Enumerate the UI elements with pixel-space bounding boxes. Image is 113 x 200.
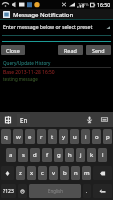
staticText: v	[52, 169, 56, 177]
staticText: En	[20, 116, 28, 124]
staticText: p	[106, 133, 110, 141]
button[interactable]: English	[29, 184, 81, 198]
button[interactable]: w	[13, 129, 23, 144]
staticText: f	[46, 151, 49, 159]
button[interactable]: o	[92, 129, 101, 144]
staticText: Enter message below or select preset	[3, 24, 93, 31]
button[interactable]: a	[6, 148, 16, 162]
button[interactable]: Backspace	[93, 166, 112, 180]
other: Switch keyboard	[100, 115, 109, 124]
staticText: m	[84, 169, 90, 177]
staticText: b	[63, 169, 67, 177]
staticText: r	[40, 133, 43, 141]
staticText: Base 2013-11-28 16:50	[3, 69, 55, 76]
button[interactable]: v	[49, 166, 58, 180]
button[interactable]: k	[87, 148, 96, 162]
staticText: i	[85, 133, 87, 141]
button[interactable]: j	[76, 148, 85, 162]
staticText: Read	[64, 47, 77, 54]
staticText: z	[19, 169, 22, 177]
staticText: Close	[6, 47, 20, 54]
button[interactable]: s	[18, 148, 28, 162]
staticText: Send	[92, 47, 105, 54]
button[interactable]: q	[1, 129, 11, 144]
button[interactable]: Read	[58, 45, 83, 55]
staticText: y	[62, 133, 66, 141]
button[interactable]: .	[83, 184, 91, 198]
button[interactable]: p	[103, 129, 112, 144]
staticText: d	[33, 151, 37, 159]
button[interactable]: c	[38, 166, 47, 180]
button[interactable]: Enter	[93, 184, 112, 198]
button[interactable]: x	[27, 166, 36, 180]
staticText: e	[28, 133, 32, 141]
button[interactable]: Shift	[1, 166, 14, 180]
staticText: 100%	[78, 2, 89, 8]
button[interactable]: e	[25, 129, 35, 144]
staticText: c	[41, 169, 44, 177]
staticText: English	[48, 188, 63, 194]
button[interactable]: f	[42, 148, 52, 162]
button[interactable]: Enter message below or select preset	[3, 23, 110, 31]
staticText: Query/Update History	[3, 60, 51, 66]
button[interactable]: i	[81, 129, 90, 144]
staticText: l	[102, 151, 104, 159]
staticText: j	[80, 151, 82, 159]
staticText: Message Notification	[13, 10, 74, 18]
button[interactable]: l	[98, 148, 107, 162]
button[interactable]: En	[17, 114, 30, 126]
button[interactable]: Close	[1, 45, 25, 55]
button[interactable]: d	[30, 148, 40, 162]
button[interactable]: t	[48, 129, 57, 144]
button[interactable]: r	[37, 129, 46, 144]
staticText: w	[16, 133, 21, 141]
staticText: a	[9, 151, 13, 159]
button[interactable]: ?123	[1, 184, 16, 198]
staticText: .	[86, 188, 88, 195]
button[interactable]: Emoji	[18, 184, 27, 198]
button[interactable]: h	[65, 148, 74, 162]
other: Voice input	[85, 115, 94, 124]
button[interactable]: z	[16, 166, 25, 180]
button[interactable]: b	[60, 166, 69, 180]
staticText: s	[22, 151, 25, 159]
staticText: k	[90, 151, 94, 159]
button[interactable]: m	[82, 166, 91, 180]
button[interactable]: y	[59, 129, 68, 144]
staticText: q	[4, 133, 8, 141]
button[interactable]: n	[71, 166, 80, 180]
staticText: t	[51, 133, 54, 141]
button[interactable]: u	[70, 129, 79, 144]
staticText: o	[95, 133, 99, 141]
button[interactable]: g	[54, 148, 63, 162]
other: Chinese input	[4, 116, 12, 124]
staticText: ?123	[3, 188, 14, 195]
staticText: 16:50	[97, 1, 111, 8]
staticText: h	[68, 151, 72, 159]
staticText: u	[73, 133, 77, 141]
staticText: testing message	[3, 76, 38, 82]
staticText: x	[30, 169, 34, 177]
button[interactable]: Send	[86, 45, 111, 55]
staticText: n	[74, 169, 78, 177]
staticText: g	[57, 151, 61, 159]
